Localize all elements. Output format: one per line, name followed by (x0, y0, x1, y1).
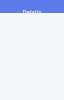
staticText: Details (22, 8, 41, 16)
